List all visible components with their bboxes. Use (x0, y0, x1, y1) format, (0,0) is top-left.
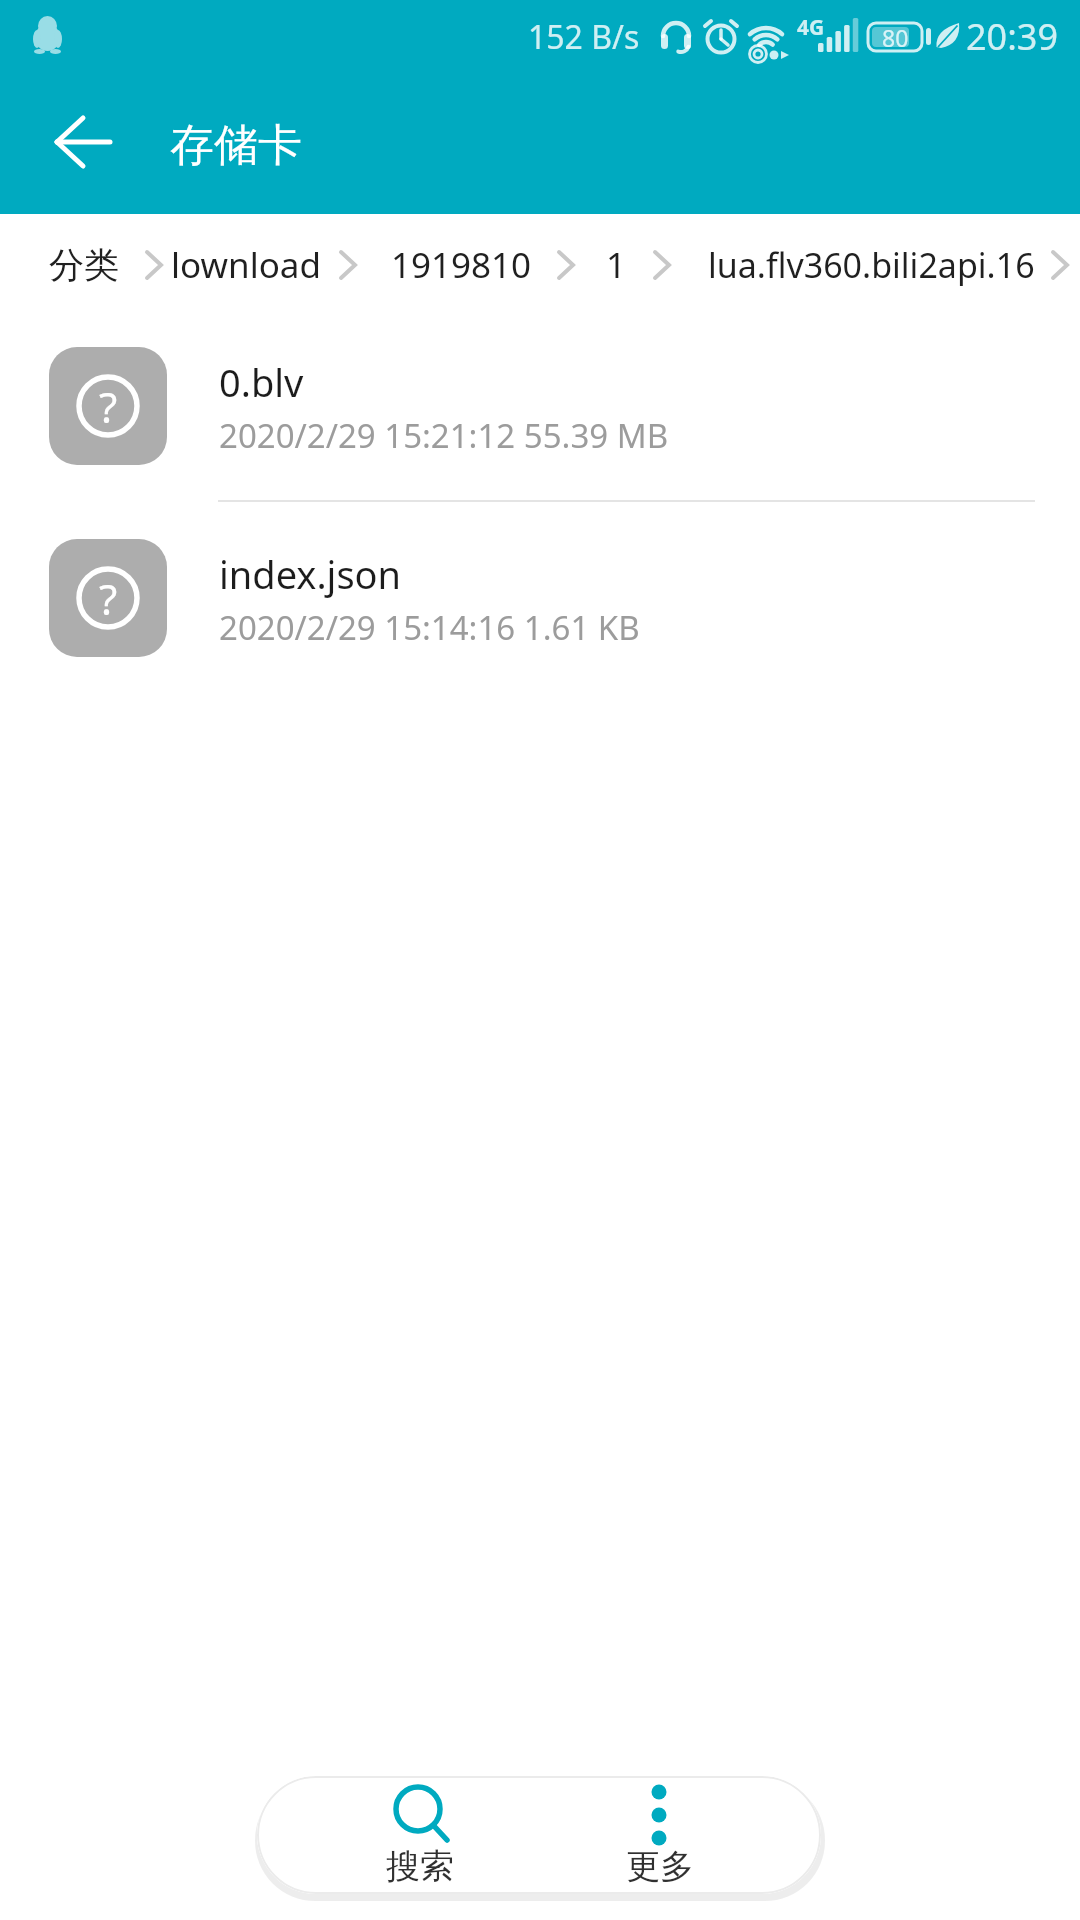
staticText: ? (99, 570, 118, 627)
staticText: 0.blv (219, 356, 304, 408)
button[interactable]: ? (49, 539, 167, 657)
staticText: 更多 (626, 1845, 694, 1888)
staticText: 2020/2/29 15:14:16 1.61 KB (219, 605, 640, 650)
staticText: 1 (606, 241, 627, 289)
button[interactable]: ? (49, 347, 167, 465)
staticText: 存储卡 (170, 118, 302, 173)
button[interactable]: 更多 (539, 1776, 781, 1894)
staticText: 4G (797, 13, 825, 42)
staticText: 20:39 (966, 12, 1059, 61)
staticText: 1919810 (391, 241, 532, 289)
staticText: lua.flv360.bili2api.16 (708, 242, 1035, 288)
staticText: 搜索 (386, 1845, 454, 1888)
staticText: lownload (171, 241, 322, 289)
staticText: 152 B/s (528, 15, 640, 59)
staticText: ? (99, 378, 118, 435)
staticText: 分类 (49, 243, 119, 287)
staticText: index.json (219, 548, 402, 600)
button[interactable]: 搜索 (297, 1776, 499, 1894)
button[interactable] (35, 104, 131, 184)
staticText: 2020/2/29 15:21:12 55.39 MB (219, 413, 669, 458)
staticText: 80 (882, 22, 909, 53)
